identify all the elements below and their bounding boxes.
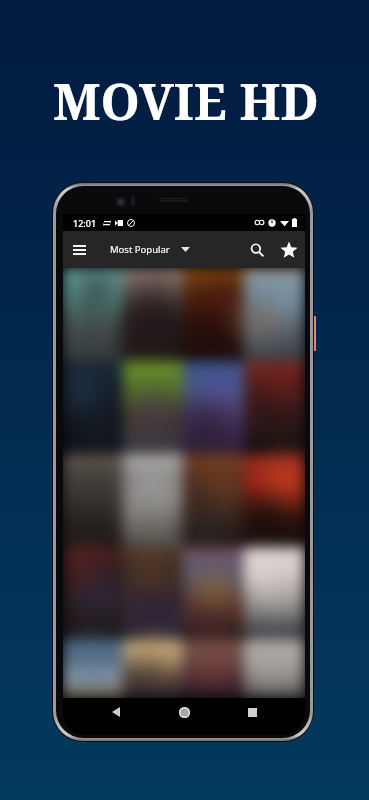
button[interactable] <box>63 640 123 698</box>
button[interactable]: Back <box>101 698 131 726</box>
button[interactable] <box>63 547 123 640</box>
button[interactable]: Home <box>169 698 199 726</box>
button[interactable]: Most Popular <box>110 243 190 256</box>
button[interactable] <box>123 454 183 547</box>
button[interactable] <box>244 361 305 454</box>
button[interactable] <box>244 268 305 361</box>
button[interactable] <box>63 268 123 361</box>
button[interactable]: Open navigation menu <box>65 236 93 264</box>
button[interactable] <box>123 268 183 361</box>
button[interactable] <box>63 361 123 454</box>
button[interactable]: Search <box>242 235 272 265</box>
button[interactable] <box>183 361 244 454</box>
staticText: Most Popular <box>110 243 170 256</box>
button[interactable]: Favourites <box>275 236 303 264</box>
staticText: 12:01 <box>73 217 97 229</box>
button[interactable]: Recent apps <box>237 698 267 726</box>
button[interactable] <box>183 640 244 698</box>
button[interactable] <box>183 547 244 640</box>
button[interactable] <box>244 640 305 698</box>
staticText: MOVIE HD <box>53 67 319 135</box>
button[interactable] <box>244 454 305 547</box>
button[interactable] <box>183 268 244 361</box>
button[interactable] <box>63 454 123 547</box>
button[interactable] <box>123 640 183 698</box>
button[interactable] <box>123 547 183 640</box>
button[interactable] <box>244 547 305 640</box>
button[interactable] <box>183 454 244 547</box>
button[interactable] <box>123 361 183 454</box>
